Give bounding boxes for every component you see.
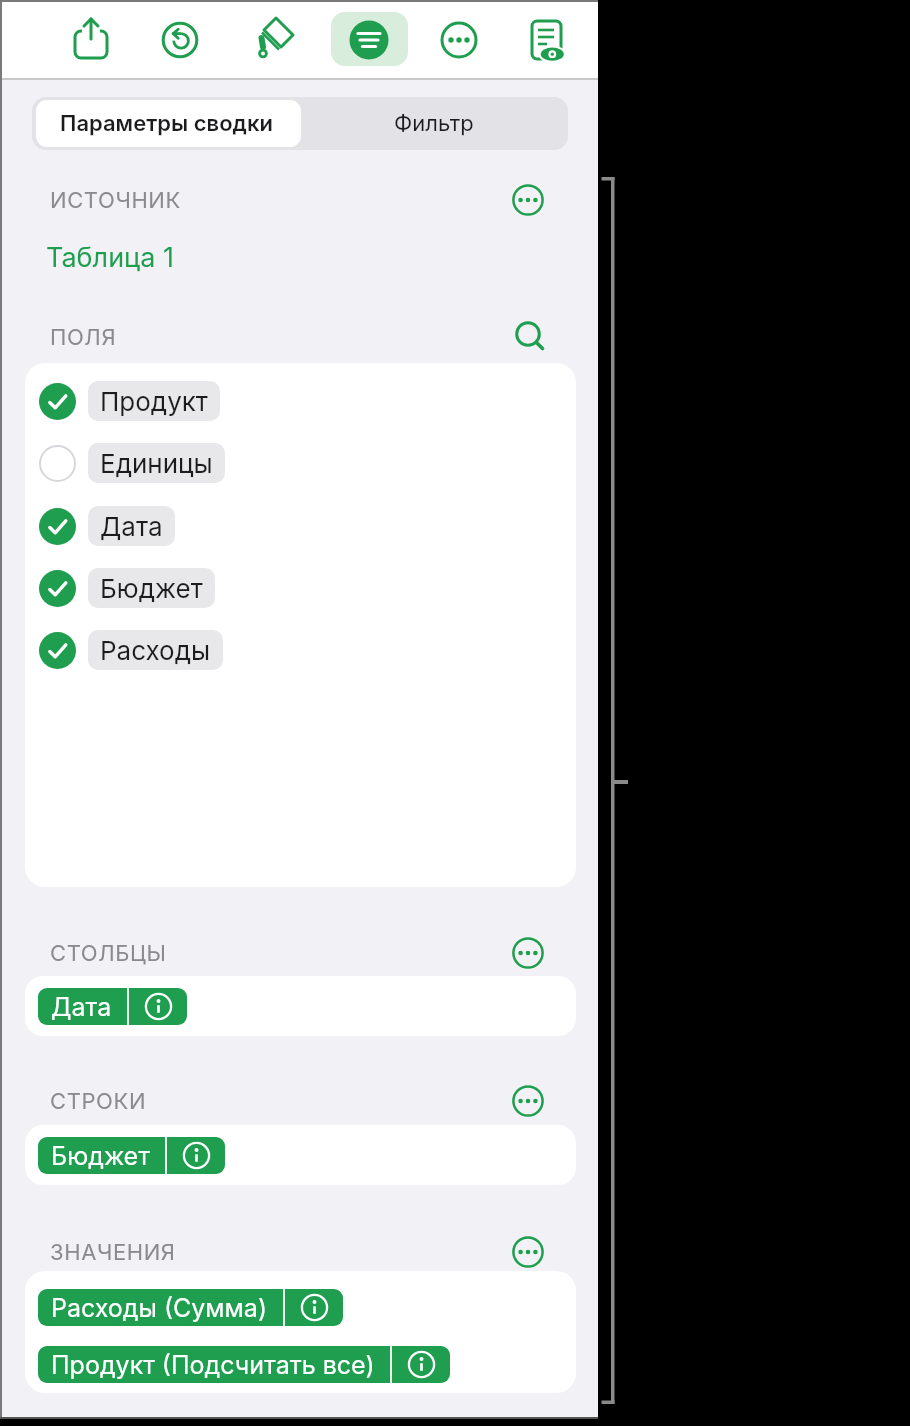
button[interactable] xyxy=(523,14,575,66)
staticText: Дата xyxy=(51,992,112,1022)
staticText: ИСТОЧНИК xyxy=(50,187,181,214)
staticText: Бюджет xyxy=(51,1141,150,1171)
staticText: Бюджет xyxy=(100,573,203,604)
staticText: Таблица 1 xyxy=(46,241,174,274)
staticText: Расходы xyxy=(100,635,211,666)
staticText: Дата xyxy=(100,511,163,542)
button[interactable]: Расходы (Сумма) xyxy=(38,1289,343,1326)
staticText: Фильтр xyxy=(394,110,474,137)
button[interactable] xyxy=(331,12,408,66)
button[interactable]: Расходы xyxy=(39,628,223,672)
button[interactable] xyxy=(511,183,545,217)
staticText: Продукт (Подсчитать все) xyxy=(51,1350,375,1380)
button[interactable] xyxy=(69,16,113,60)
staticText: ЗНАЧЕНИЯ xyxy=(50,1239,176,1266)
staticText: Расходы (Сумма) xyxy=(51,1293,268,1323)
staticText: Единицы xyxy=(100,448,213,479)
button[interactable] xyxy=(511,1084,545,1118)
button[interactable]: Фильтр xyxy=(300,97,568,150)
staticText: ПОЛЯ xyxy=(50,324,117,351)
button[interactable]: Дата xyxy=(39,504,175,548)
button[interactable]: Единицы xyxy=(39,441,225,485)
button[interactable]: Бюджет xyxy=(38,1137,225,1174)
button[interactable] xyxy=(511,1235,545,1269)
button[interactable] xyxy=(160,20,200,60)
button[interactable]: Дата xyxy=(38,988,187,1025)
staticText: СТОЛБЦЫ xyxy=(50,940,167,967)
staticText: Параметры сводки xyxy=(60,110,273,137)
button[interactable] xyxy=(439,20,479,60)
button[interactable]: Бюджет xyxy=(39,566,215,610)
staticText: СТРОКИ xyxy=(50,1088,147,1115)
button[interactable]: Продукт (Подсчитать все) xyxy=(38,1346,450,1383)
button[interactable] xyxy=(512,319,548,355)
button[interactable] xyxy=(511,936,545,970)
button[interactable]: Таблица 1 xyxy=(46,241,174,274)
button[interactable]: Продукт xyxy=(39,379,220,423)
button[interactable]: Параметры сводки xyxy=(32,97,300,150)
staticText: Продукт xyxy=(100,386,208,417)
button[interactable] xyxy=(247,14,297,64)
